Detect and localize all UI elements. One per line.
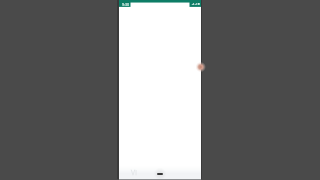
button[interactable]: Clock (121, 2, 130, 7)
button[interactable]: Open panel (192, 59, 201, 75)
button[interactable]: System status icons (191, 2, 200, 6)
staticText: 9:30 (122, 2, 130, 7)
button[interactable]: Home (153, 170, 167, 179)
